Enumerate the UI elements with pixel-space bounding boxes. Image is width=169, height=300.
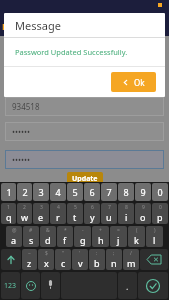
- button[interactable]: 934518: [5, 97, 164, 116]
- staticText: r: [56, 211, 60, 223]
- staticText: c: [61, 257, 66, 269]
- button[interactable]: 9: [135, 183, 151, 201]
- staticText: h: [98, 234, 104, 246]
- staticText: n: [111, 257, 117, 269]
- staticText: -: [82, 227, 84, 234]
- staticText: 8: [125, 204, 128, 211]
- staticText: q: [6, 211, 12, 223]
- staticText: ): [154, 227, 156, 234]
- button[interactable]: 3: [33, 203, 49, 224]
- button[interactable]: 0: [152, 203, 168, 224]
- button[interactable]: 6: [84, 183, 100, 201]
- button[interactable]: @: [6, 226, 22, 247]
- staticText: l: [153, 234, 156, 246]
- button[interactable]: Emoji: [21, 272, 40, 299]
- staticText: ;: [113, 250, 115, 257]
- button[interactable]: $: [38, 249, 54, 270]
- button[interactable]: 8: [118, 203, 134, 224]
- button[interactable]: Enter: [138, 272, 168, 299]
- staticText: 1: [6, 186, 12, 198]
- staticText: ": [62, 250, 65, 257]
- button[interactable]: 2: [17, 203, 32, 224]
- button[interactable]: ••••••: [5, 122, 164, 141]
- button[interactable]: *: [57, 226, 73, 247]
- staticText: j: [117, 234, 120, 246]
- staticText: @: [12, 227, 17, 234]
- staticText: k: [134, 234, 139, 246]
- staticText: 0: [157, 186, 163, 198]
- staticText: w: [21, 211, 29, 223]
- staticText: i: [125, 211, 128, 223]
- button[interactable]: 5: [67, 203, 83, 224]
- staticText: *: [64, 227, 67, 234]
- staticText: ••••••: [12, 126, 31, 137]
- button[interactable]: 8: [118, 183, 134, 201]
- button[interactable]: 6: [84, 203, 100, 224]
- staticText: s: [29, 234, 34, 246]
- staticText: 2: [23, 204, 26, 211]
- staticText: 3: [38, 186, 44, 198]
- button[interactable]: Update: [67, 172, 103, 186]
- staticText: Update: [72, 174, 98, 184]
- button[interactable]: /: [123, 249, 139, 270]
- button[interactable]: 1: [1, 183, 16, 201]
- button[interactable]: Voice input: [41, 272, 60, 299]
- button[interactable]: #: [23, 226, 39, 247]
- staticText: ••••••: [12, 154, 31, 165]
- button[interactable]: ~: [22, 249, 37, 270]
- staticText: :: [96, 250, 98, 257]
- staticText: b: [94, 257, 100, 269]
- button[interactable]: Backspace: [140, 249, 168, 270]
- button[interactable]: 2: [17, 183, 32, 201]
- button[interactable]: :: [89, 249, 105, 270]
- button[interactable]: ;: [106, 249, 122, 270]
- staticText: f: [63, 234, 67, 246]
- button[interactable]: 9: [135, 203, 151, 224]
- button[interactable]: ": [55, 249, 71, 270]
- button[interactable]: Ok: [111, 72, 156, 92]
- button[interactable]: 1: [1, 203, 16, 224]
- staticText: =: [117, 227, 120, 234]
- staticText: 1: [7, 204, 10, 211]
- staticText: #: [29, 227, 33, 234]
- staticText: z: [27, 257, 32, 269]
- button[interactable]: ': [72, 249, 88, 270]
- button[interactable]: -: [74, 226, 91, 247]
- staticText: 4: [57, 204, 60, 211]
- staticText: v: [78, 257, 83, 269]
- button[interactable]: 0: [152, 183, 168, 201]
- button[interactable]: 3: [33, 183, 49, 201]
- staticText: &: [46, 227, 50, 234]
- button[interactable]: &: [40, 226, 56, 247]
- staticText: g: [80, 234, 86, 246]
- staticText: o: [140, 211, 146, 223]
- button[interactable]: =: [110, 226, 127, 247]
- button[interactable]: ): [146, 226, 163, 247]
- button[interactable]: +: [92, 226, 109, 247]
- button[interactable]: 7: [101, 183, 117, 201]
- button[interactable]: 123: [1, 272, 20, 299]
- button[interactable]: .: [118, 272, 137, 299]
- button[interactable]: 5: [67, 183, 83, 201]
- staticText: 6: [89, 186, 95, 198]
- staticText: /: [130, 250, 132, 257]
- staticText: 7: [106, 186, 112, 198]
- staticText: p: [157, 211, 163, 223]
- staticText: E: [2, 20, 8, 32]
- staticText: a: [11, 234, 17, 246]
- staticText: 5: [74, 204, 77, 211]
- staticText: .: [126, 280, 129, 292]
- staticText: d: [45, 234, 51, 246]
- staticText: ~: [28, 250, 31, 257]
- staticText: Password Updated Successfully.: [15, 47, 128, 57]
- button[interactable]: Shift: [1, 249, 21, 270]
- staticText: 3: [40, 204, 43, 211]
- button[interactable]: 4: [50, 183, 66, 201]
- button[interactable]: 7: [101, 203, 117, 224]
- staticText: x: [44, 257, 49, 269]
- staticText: 8: [123, 186, 129, 198]
- button[interactable]: (: [128, 226, 145, 247]
- button[interactable]: ••••••: [5, 150, 164, 169]
- button[interactable]: 4: [50, 203, 66, 224]
